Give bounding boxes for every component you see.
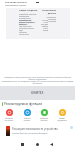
staticText: ХАРАКТЕРИСТИКИ bbox=[5, 1, 27, 4]
staticText: Очистка bbox=[19, 117, 35, 119]
staticText: Цвет bbox=[19, 29, 23, 31]
staticText: Узнайте больше о полезных функциях bbox=[12, 132, 48, 135]
button[interactable]: Рекомендуемые функции bbox=[2, 102, 43, 106]
staticText: Рекомендуемые функции bbox=[4, 102, 43, 106]
staticText: Подробное описание параметров bbox=[19, 13, 40, 17]
staticText: Россия bbox=[42, 19, 48, 21]
button[interactable]: Back bbox=[50, 143, 53, 146]
staticText: и технических возможностей bbox=[19, 17, 40, 21]
staticText: Габариты bbox=[19, 31, 27, 33]
button[interactable]: Расширьте возможности устройства bbox=[6, 126, 72, 136]
staticText: Сервис bbox=[54, 117, 70, 119]
staticText: данного устройства модели bbox=[19, 21, 40, 25]
staticText: параметры bbox=[46, 16, 56, 18]
staticText: положениями статьи 437 Гражданского коде… bbox=[1, 80, 74, 84]
staticText: Обновить bbox=[1, 117, 17, 119]
staticText: Материал корпуса bbox=[19, 27, 35, 29]
staticText: Производитель bbox=[19, 19, 32, 21]
staticText: X-200 bbox=[43, 21, 48, 23]
staticText: Тип устройства bbox=[19, 25, 32, 27]
button[interactable]: Home bbox=[36, 143, 39, 146]
staticText: Информация о товаре, включая цену, носит… bbox=[1, 76, 74, 80]
staticText: ЮНИТЕХ bbox=[31, 91, 44, 95]
staticText: Общие сведения bbox=[19, 9, 38, 12]
staticText: спецификация модели bbox=[5, 4, 26, 7]
staticText: Сталь bbox=[43, 27, 48, 29]
staticText: Бытовая bbox=[41, 23, 48, 25]
staticText: Серый bbox=[42, 29, 48, 31]
staticText: Памяти bbox=[19, 119, 35, 121]
staticText: Масса нетто bbox=[19, 33, 29, 35]
button[interactable]: Проверка bbox=[36, 109, 52, 121]
staticText: ПО сейчас bbox=[1, 119, 17, 121]
button[interactable]: Очистка bbox=[19, 109, 35, 121]
button[interactable]: Подробнее bbox=[70, 126, 73, 129]
staticText: описание bbox=[48, 20, 56, 22]
button[interactable]: Обновить bbox=[1, 109, 17, 121]
staticText: Модель изделия bbox=[19, 21, 33, 23]
staticText: Проверка bbox=[36, 117, 52, 119]
staticText: Расширьте возможности устройства bbox=[12, 127, 58, 131]
staticText: Прибор bbox=[41, 25, 48, 27]
staticText: Категория bbox=[19, 23, 28, 25]
staticText: значения bbox=[48, 18, 56, 20]
staticText: Технические данные bbox=[41, 9, 56, 15]
staticText: Поддержка bbox=[54, 119, 70, 121]
button[interactable]: Сервис bbox=[54, 109, 70, 121]
staticText: Системы bbox=[36, 119, 52, 121]
